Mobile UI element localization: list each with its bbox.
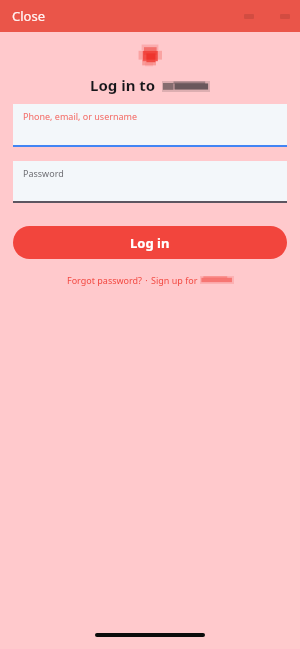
button[interactable]: Password [13, 161, 287, 203]
staticText: Log in to [90, 75, 156, 95]
button[interactable]: Close [0, 1, 57, 31]
button[interactable]: Sign up for [151, 274, 234, 286]
staticText: Phone, email, or username [23, 110, 138, 122]
staticText: · [143, 274, 151, 286]
staticText: Close [12, 7, 45, 25]
button[interactable]: Phone, email, or username [13, 104, 287, 147]
button[interactable]: Forgot password? [67, 274, 143, 286]
staticText: Log in [130, 234, 170, 252]
button[interactable]: Log in [13, 226, 287, 259]
staticText: Sign up for [151, 274, 200, 286]
staticText: Forgot password? [67, 274, 143, 286]
staticText: Password [23, 167, 64, 179]
other: App logo [0, 43, 300, 69]
